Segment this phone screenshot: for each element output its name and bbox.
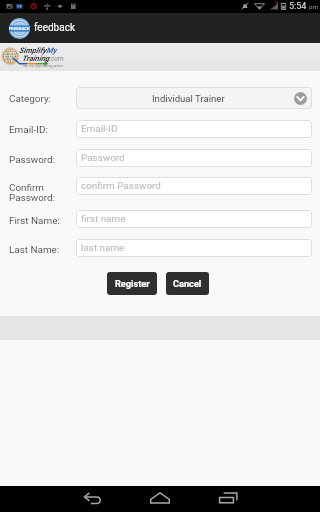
button[interactable]: Feedback bbox=[8, 17, 30, 39]
button[interactable]: Password bbox=[76, 149, 312, 167]
staticText: Register bbox=[115, 278, 150, 289]
staticText: Email-ID bbox=[81, 123, 118, 135]
staticText: Password bbox=[81, 152, 125, 164]
staticText: Password: bbox=[9, 154, 56, 166]
staticText: First Name: bbox=[9, 215, 60, 227]
staticText: Category: bbox=[9, 93, 52, 105]
staticText: SimplifyMy bbox=[19, 46, 57, 55]
staticText: Last Name: bbox=[9, 244, 60, 256]
staticText: Training.com bbox=[22, 54, 64, 63]
button[interactable]: Back bbox=[58, 486, 126, 512]
staticText: Individual Trainer bbox=[152, 93, 225, 104]
button[interactable]: first name bbox=[76, 210, 312, 228]
staticText: feedback bbox=[34, 22, 75, 34]
button[interactable]: Home bbox=[126, 486, 194, 512]
button[interactable]: SimplifyMyTraining.com bbox=[0, 43, 320, 71]
button[interactable]: Email-ID bbox=[76, 120, 312, 138]
staticText: Your one stop training partner bbox=[22, 64, 63, 68]
button[interactable]: last name bbox=[76, 239, 312, 257]
staticText: first name bbox=[81, 213, 126, 225]
staticText: FEEDBACK bbox=[9, 26, 30, 31]
button[interactable]: Register bbox=[107, 272, 157, 295]
staticText: confirm Password bbox=[81, 180, 161, 192]
staticText: 5:54 bbox=[289, 1, 307, 12]
staticText: last name bbox=[81, 242, 125, 254]
staticText: Confirm Password: bbox=[9, 182, 56, 204]
staticText: pm bbox=[309, 3, 318, 10]
button[interactable]: Recent apps bbox=[194, 486, 262, 512]
button[interactable]: confirm Password bbox=[76, 177, 312, 195]
button[interactable]: Individual Trainer bbox=[76, 87, 312, 109]
staticText: Cancel bbox=[173, 278, 202, 289]
staticText: Email-ID: bbox=[9, 124, 48, 136]
button[interactable]: Cancel bbox=[166, 272, 209, 295]
